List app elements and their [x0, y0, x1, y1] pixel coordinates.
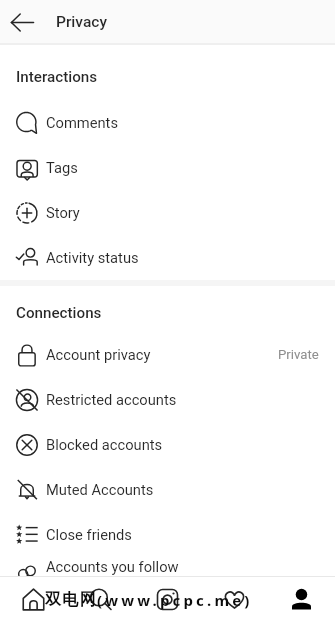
button[interactable]: Blocked accounts — [0, 422, 335, 467]
staticText: Account privacy — [46, 346, 151, 363]
staticText: Private — [278, 347, 319, 362]
button[interactable]: Story — [0, 190, 335, 235]
button[interactable]: Accounts you follow — [0, 557, 335, 576]
staticText: Activity status — [46, 249, 139, 266]
staticText: Accounts you follow — [46, 558, 179, 575]
button[interactable]: Account privacy — [0, 332, 335, 377]
button[interactable]: Back — [5, 5, 39, 39]
button[interactable]: Reels — [134, 577, 201, 622]
button[interactable]: Search — [67, 577, 134, 622]
button[interactable]: Tags — [0, 145, 335, 190]
staticText: Connections — [16, 304, 102, 322]
staticText: 双电网 — [45, 590, 97, 610]
staticText: Restricted accounts — [46, 391, 177, 408]
staticText: Story — [46, 204, 80, 221]
button[interactable]: Comments — [0, 100, 335, 145]
staticText: Interactions — [16, 68, 98, 86]
staticText: Blocked accounts — [46, 436, 163, 453]
staticText: Comments — [46, 114, 118, 131]
button[interactable]: Activity status — [0, 235, 335, 280]
button[interactable]: Muted Accounts — [0, 467, 335, 512]
button[interactable]: Close friends — [0, 512, 335, 557]
button[interactable]: Activity — [201, 577, 268, 622]
staticText: Tags — [46, 159, 78, 176]
staticText: (www.pcpc.me) — [97, 590, 253, 610]
button[interactable]: Profile — [268, 577, 335, 622]
staticText: Muted Accounts — [46, 481, 154, 498]
button[interactable]: Home — [0, 577, 67, 622]
button[interactable]: Restricted accounts — [0, 377, 335, 422]
staticText: Close friends — [46, 526, 132, 543]
staticText: Privacy — [56, 13, 107, 31]
